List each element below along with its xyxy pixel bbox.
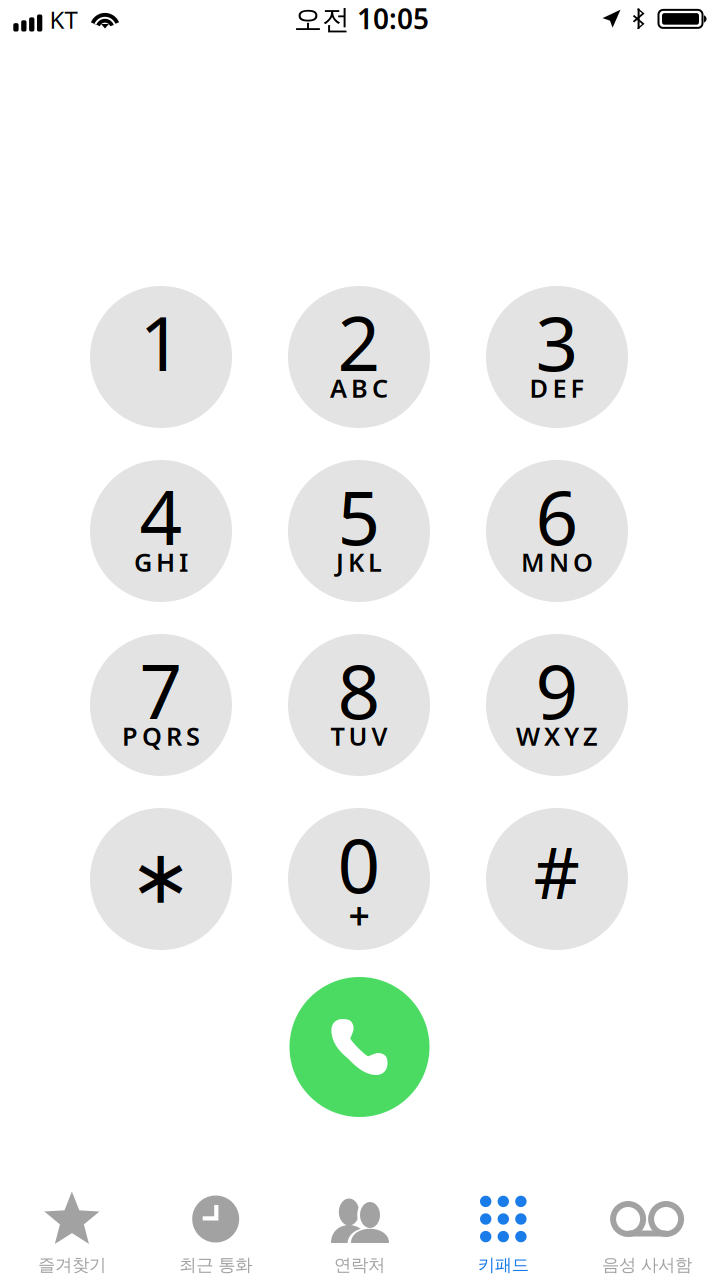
- button[interactable]: 8: [288, 634, 430, 776]
- staticText: 오전 10:05: [294, 0, 429, 37]
- staticText: 즐겨찾기: [38, 1254, 106, 1276]
- staticText: 연락처: [334, 1254, 385, 1276]
- button[interactable]: 2: [288, 286, 430, 428]
- staticText: +: [348, 890, 369, 940]
- button[interactable]: 7: [90, 634, 232, 776]
- staticText: KT: [49, 4, 77, 35]
- staticText: T U V: [330, 719, 387, 753]
- button[interactable]: 최근 통화: [144, 1170, 288, 1280]
- staticText: 8: [337, 640, 380, 740]
- staticText: 6: [535, 466, 578, 566]
- staticText: 키패드: [478, 1254, 529, 1276]
- staticText: 음성 사서함: [602, 1254, 692, 1276]
- button[interactable]: 5: [288, 460, 430, 602]
- staticText: J K L: [336, 545, 382, 579]
- button[interactable]: ∗: [90, 808, 232, 950]
- staticText: 5: [337, 466, 380, 566]
- button[interactable]: 키패드: [431, 1170, 575, 1280]
- staticText: W X Y Z: [516, 719, 598, 753]
- staticText: G H I: [134, 545, 188, 579]
- staticText: 최근 통화: [179, 1254, 252, 1276]
- button[interactable]: 3: [486, 286, 628, 428]
- staticText: P Q R S: [122, 719, 200, 753]
- staticText: 3: [535, 292, 578, 392]
- button[interactable]: 9: [486, 634, 628, 776]
- button[interactable]: 연락처: [288, 1170, 431, 1280]
- button[interactable]: 6: [486, 460, 628, 602]
- staticText: 2: [337, 292, 380, 392]
- button[interactable]: 즐겨찾기: [0, 1170, 144, 1280]
- staticText: 9: [535, 640, 578, 740]
- staticText: ∗: [129, 835, 192, 919]
- staticText: 7: [139, 640, 182, 740]
- button[interactable]: 1: [90, 286, 232, 428]
- staticText: 0: [337, 814, 380, 914]
- staticText: D E F: [529, 371, 584, 405]
- staticText: #: [533, 823, 580, 919]
- button[interactable]: 4: [90, 460, 232, 602]
- staticText: M N O: [521, 545, 593, 579]
- button[interactable]: Call: [289, 977, 429, 1117]
- button[interactable]: #: [486, 808, 628, 950]
- staticText: A B C: [330, 371, 388, 405]
- button[interactable]: 음성 사서함: [575, 1170, 719, 1280]
- button[interactable]: 0: [288, 808, 430, 950]
- staticText: 4: [139, 466, 182, 566]
- staticText: 1: [139, 292, 182, 392]
